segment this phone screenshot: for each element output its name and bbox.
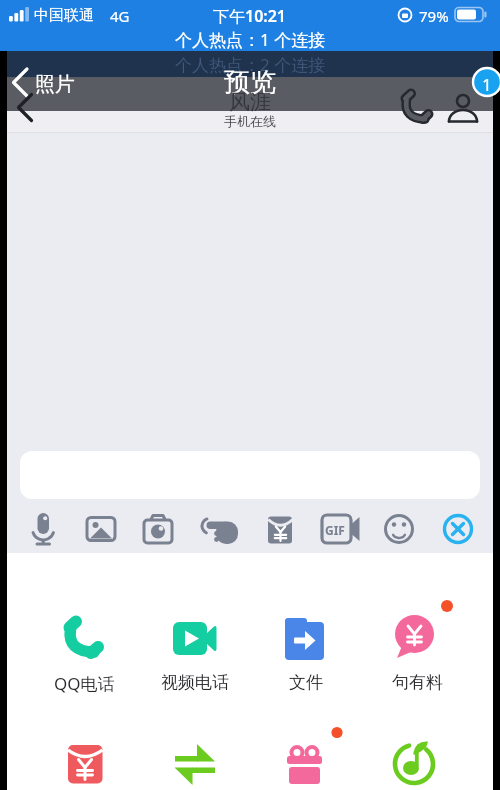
- button[interactable]: [259, 507, 303, 551]
- button[interactable]: [261, 735, 351, 790]
- button[interactable]: [39, 735, 129, 790]
- button[interactable]: [377, 507, 421, 551]
- button[interactable]: [372, 735, 462, 790]
- staticText: 句有料: [392, 672, 443, 693]
- staticText: 4G: [110, 6, 130, 26]
- button[interactable]: [8, 64, 98, 106]
- staticText: GIF: [325, 522, 345, 538]
- staticText: 79%: [419, 6, 449, 26]
- staticText: 照片: [35, 72, 75, 97]
- button[interactable]: [261, 605, 351, 700]
- button[interactable]: [150, 605, 240, 700]
- button[interactable]: [436, 507, 480, 551]
- staticText: QQ电话: [54, 672, 115, 694]
- staticText: 中国联通: [34, 6, 94, 25]
- staticText: 视频电话: [161, 672, 229, 693]
- button[interactable]: [150, 735, 240, 790]
- button[interactable]: [39, 605, 129, 700]
- staticText: 1: [482, 73, 492, 96]
- button[interactable]: [372, 605, 462, 700]
- staticText: 手机在线: [224, 113, 276, 129]
- button[interactable]: [317, 507, 361, 551]
- button[interactable]: [21, 507, 65, 551]
- button[interactable]: [198, 507, 242, 551]
- staticText: 个人热点：2 个连接: [175, 53, 326, 76]
- button[interactable]: [79, 507, 123, 551]
- staticText: 风涯: [229, 89, 271, 115]
- staticText: 文件: [289, 672, 323, 693]
- staticText: 下午10:21: [213, 5, 287, 27]
- staticText: 个人热点：1 个连接: [175, 28, 326, 51]
- button[interactable]: [136, 507, 180, 551]
- staticText: 预览: [224, 66, 276, 99]
